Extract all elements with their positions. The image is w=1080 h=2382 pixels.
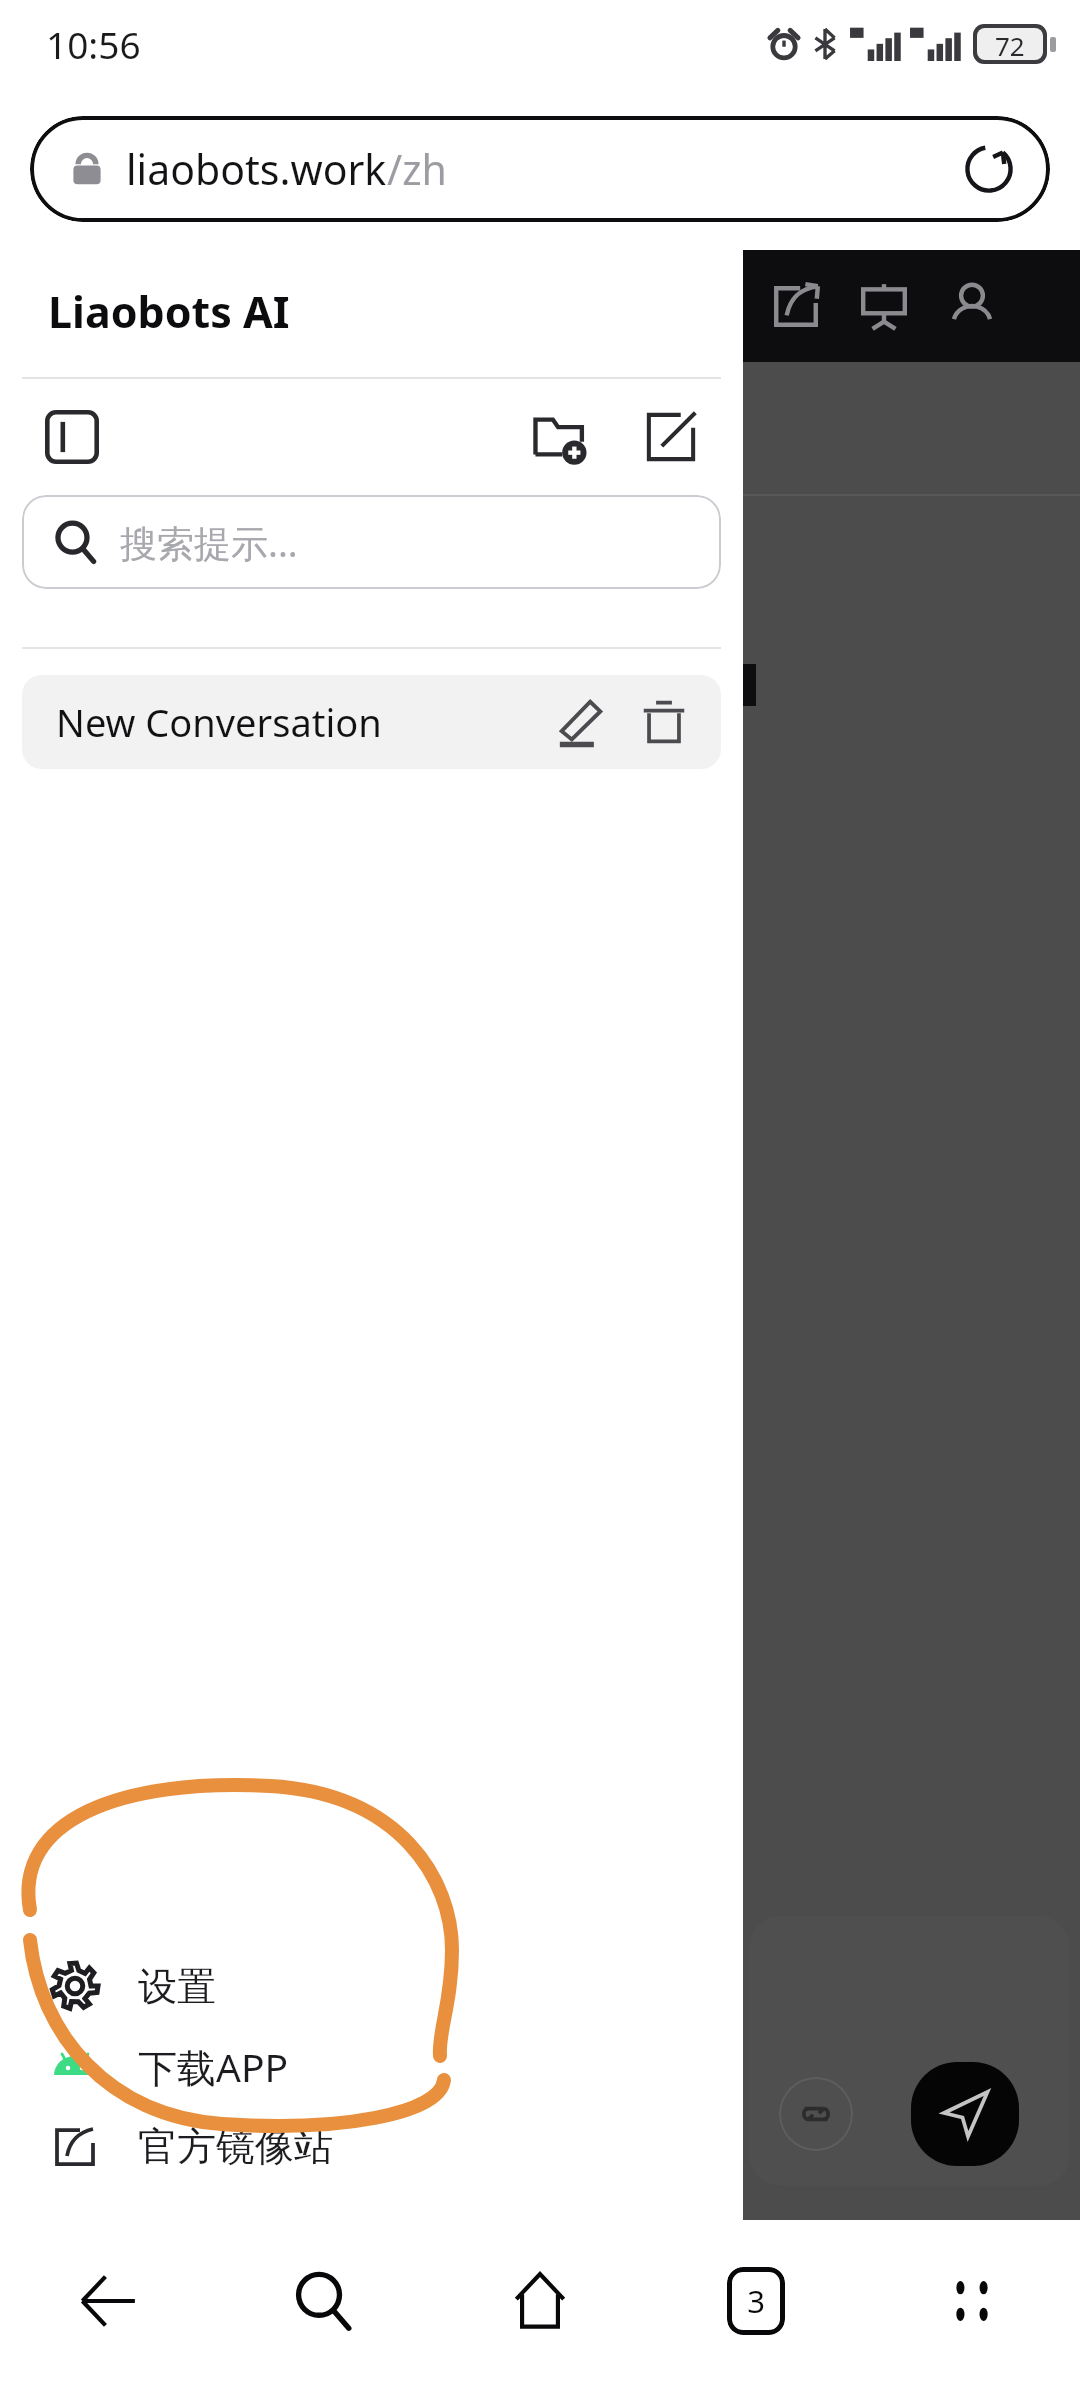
staticText: 设置 [138,1962,216,2011]
button[interactable]: Back [0,2220,216,2382]
button[interactable]: 下载APP [0,2026,743,2106]
button[interactable]: Reload [954,134,1024,204]
staticText: 72 [995,28,1025,60]
staticText: /zh [387,141,447,197]
button[interactable]: Presentation [847,269,921,343]
button[interactable]: 设置 [0,1946,743,2026]
staticText: Liaobots AI [48,282,290,341]
button[interactable]: Toggle sidebar [34,399,110,475]
staticText: 官方镜像站 [138,2122,333,2171]
button[interactable]: More [864,2220,1080,2382]
staticText: 下载APP [138,2040,289,2093]
button[interactable]: Home [432,2220,648,2382]
button[interactable]: New Conversation [22,675,721,769]
button[interactable]: 官方镜像站 [0,2106,743,2186]
button[interactable]: Regenerate [779,2077,853,2151]
button[interactable]: Send [911,2062,1019,2166]
button[interactable]: Tabs [648,2220,864,2382]
staticText: 10:56 [46,19,141,69]
button[interactable]: Share [759,269,833,343]
staticText: liaobots.work [126,141,387,197]
button[interactable]: 搜索提示... [22,495,721,589]
button[interactable]: Account [935,269,1009,343]
button[interactable]: New folder [521,397,601,477]
button[interactable]: Rename [547,688,615,756]
staticText: 3 [747,2280,765,2322]
button[interactable]: New chat [633,399,709,475]
staticText: 搜索提示... [120,517,298,568]
button[interactable]: Search [216,2220,432,2382]
staticText: New Conversation [56,696,382,748]
button[interactable]: Delete [631,689,697,755]
button[interactable]: liaobots.work [30,116,1050,222]
